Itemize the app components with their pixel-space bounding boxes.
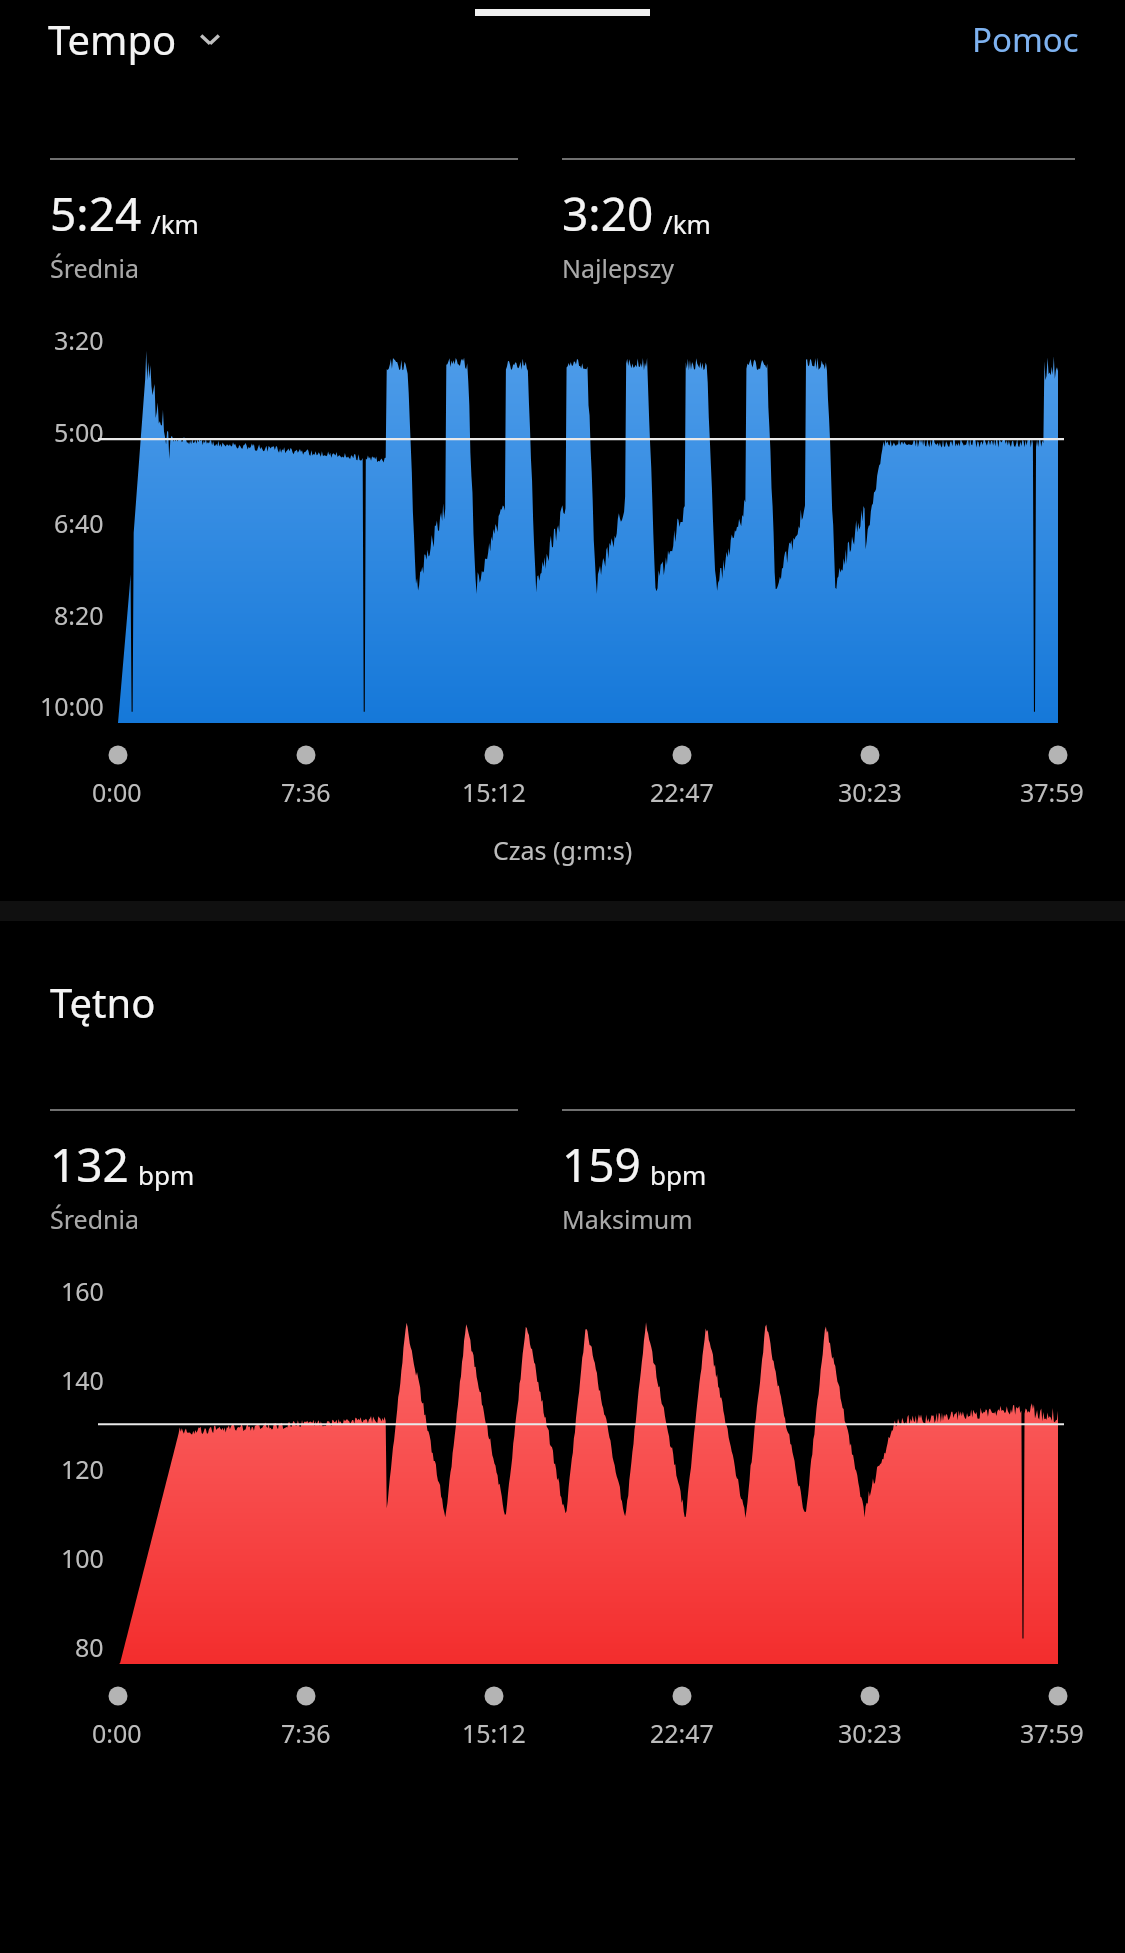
staticText: 22:47: [650, 775, 714, 809]
staticText: 7:36: [281, 775, 331, 809]
button[interactable]: 132: [50, 1109, 518, 1236]
staticText: 15:12: [462, 775, 526, 809]
staticText: 140: [61, 1363, 104, 1397]
other: Change metric: [193, 22, 227, 56]
staticText: 159: [562, 1133, 641, 1196]
staticText: 7:36: [281, 1716, 331, 1750]
staticText: 132: [50, 1133, 129, 1196]
staticText: Czas (g:m:s): [493, 833, 633, 867]
staticText: 5:00: [54, 415, 104, 449]
staticText: bpm: [138, 1157, 195, 1192]
staticText: Maksimum: [562, 1202, 693, 1236]
button[interactable]: 159: [562, 1109, 1075, 1236]
button[interactable]: Tempo: [48, 12, 227, 66]
staticText: bpm: [650, 1157, 707, 1192]
staticText: 3:20: [562, 182, 654, 245]
staticText: 100: [61, 1541, 104, 1575]
staticText: 15:12: [462, 1716, 526, 1750]
staticText: 80: [75, 1630, 104, 1664]
staticText: Najlepszy: [562, 251, 674, 285]
staticText: 37:59: [1020, 1716, 1084, 1750]
staticText: /km: [151, 206, 199, 241]
staticText: 10:00: [40, 689, 104, 723]
staticText: 120: [61, 1452, 104, 1486]
staticText: 3:20: [54, 323, 104, 357]
staticText: 30:23: [838, 775, 902, 809]
button[interactable]: 5:24: [50, 158, 518, 285]
staticText: Tempo: [48, 12, 177, 66]
staticText: 5:24: [50, 182, 142, 245]
staticText: 22:47: [650, 1716, 714, 1750]
button[interactable]: Pomoc: [972, 17, 1079, 62]
staticText: 30:23: [838, 1716, 902, 1750]
staticText: 6:40: [54, 506, 104, 540]
staticText: Średnia: [50, 251, 139, 285]
staticText: Średnia: [50, 1202, 139, 1236]
staticText: 0:00: [92, 775, 142, 809]
staticText: 160: [61, 1274, 104, 1308]
staticText: 8:20: [54, 598, 104, 632]
staticText: /km: [663, 206, 711, 241]
staticText: Tętno: [50, 975, 156, 1029]
staticText: Pomoc: [972, 17, 1079, 62]
staticText: 37:59: [1020, 775, 1084, 809]
button[interactable]: 3:20: [562, 158, 1075, 285]
staticText: 0:00: [92, 1716, 142, 1750]
